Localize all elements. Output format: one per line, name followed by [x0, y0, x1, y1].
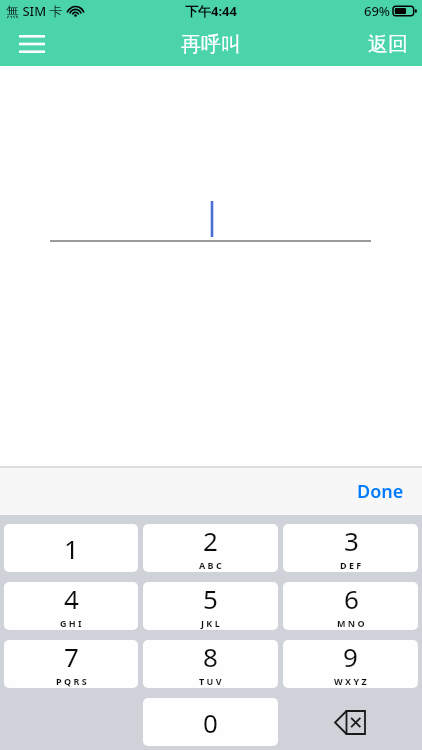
button[interactable]: 6 [283, 582, 418, 630]
staticText: 8 [203, 640, 218, 674]
button[interactable]: 返回 [368, 32, 408, 57]
button[interactable]: 0 [143, 698, 278, 746]
staticText: 4 [64, 582, 79, 616]
staticText: P Q R S [56, 675, 87, 687]
button[interactable]: Menu [12, 24, 52, 64]
staticText: 下午4:44 [185, 2, 237, 20]
staticText: 3 [344, 524, 359, 558]
staticText: 無 SIM 卡 [6, 2, 63, 20]
staticText: 0 [203, 705, 218, 740]
staticText: 1 [64, 531, 79, 566]
staticText: M N O [337, 617, 365, 629]
staticText: 6 [344, 582, 359, 616]
staticText: 返回 [368, 32, 408, 57]
button[interactable]: 4 [4, 582, 138, 630]
staticText: 再呼叫 [181, 32, 241, 57]
staticText: 7 [64, 640, 79, 674]
staticText: 69% [364, 2, 390, 20]
staticText: 2 [203, 524, 218, 558]
button[interactable]: Delete [283, 698, 418, 746]
staticText: Done [357, 479, 404, 504]
button[interactable]: 5 [143, 582, 278, 630]
staticText: D E F [340, 559, 362, 571]
staticText: T U V [199, 675, 222, 687]
staticText: 5 [203, 582, 218, 616]
button[interactable]: 8 [143, 640, 278, 688]
staticText: J K L [201, 617, 220, 629]
button[interactable]: Done [353, 473, 408, 510]
button[interactable]: 1 [4, 524, 138, 572]
staticText: 9 [343, 640, 358, 674]
button[interactable]: 2 [143, 524, 278, 572]
staticText: A B C [199, 559, 222, 571]
button[interactable]: 7 [4, 640, 138, 688]
button[interactable]: 9 [283, 640, 418, 688]
staticText: G H I [60, 617, 82, 629]
staticText: W X Y Z [334, 675, 367, 687]
button[interactable]: 3 [283, 524, 418, 572]
